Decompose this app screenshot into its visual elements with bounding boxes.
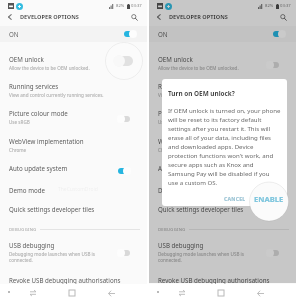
- staticText: Running services: [158, 82, 208, 90]
- staticText: use a custom OS.: [168, 178, 218, 186]
- button[interactable]: WebView implementation: [149, 136, 296, 158]
- button[interactable]: Revoke USB debugging authorisations: [0, 275, 147, 291]
- button[interactable]: Demo mode: [0, 185, 147, 201]
- staticText: Quick settings developer tiles: [9, 205, 95, 213]
- staticText: Picture colour mode: [9, 109, 68, 117]
- button[interactable]: Running services: [0, 81, 147, 103]
- staticText: ENABLE: [254, 193, 284, 203]
- staticText: erase all of your data, including files: [168, 133, 271, 141]
- button[interactable]: Home: [213, 285, 229, 300]
- staticText: Allow the device to be OEM unlocked.: [158, 65, 239, 71]
- staticText: Chrome: [158, 147, 176, 153]
- button[interactable]: Picture colour mode: [149, 108, 296, 130]
- staticText: CANCEL: [224, 195, 246, 202]
- staticText: ENABLE: [254, 194, 284, 204]
- button[interactable]: WebView implementation: [0, 136, 147, 158]
- button[interactable]: ON: [0, 26, 147, 42]
- button[interactable]: Revoke USB debugging authorisations: [149, 275, 296, 291]
- staticText: Quick settings developer tiles: [158, 205, 244, 213]
- button[interactable]: Back: [4, 11, 16, 23]
- button[interactable]: ON: [149, 26, 296, 42]
- staticText: 82%: [265, 3, 274, 9]
- button[interactable]: Auto update system: [149, 163, 296, 179]
- staticText: Auto update system: [9, 164, 68, 172]
- button[interactable]: OEM unlock: [0, 54, 147, 76]
- staticText: DEBUGGING: [9, 227, 37, 233]
- staticText: Chrome: [9, 147, 27, 153]
- staticText: Demo mode: [9, 186, 45, 194]
- button[interactable]: ENABLE: [254, 191, 284, 205]
- staticText: Demo mode: [158, 186, 194, 194]
- button[interactable]: Quick settings developer tiles: [0, 204, 147, 220]
- staticText: Debugging mode launches when USB is: [9, 251, 95, 257]
- button[interactable]: Recents: [25, 285, 40, 300]
- staticText: settings after you restart it. This will: [168, 124, 271, 132]
- staticText: Samsung Pay will be disabled if you: [168, 169, 270, 177]
- staticText: DEVELOPER OPTIONS: [20, 13, 79, 21]
- staticText: View and control currently running servi…: [9, 92, 104, 98]
- staticText: secure apps such as Knox and: [168, 160, 254, 168]
- button[interactable]: Home: [64, 285, 80, 300]
- staticText: Auto update system: [158, 164, 217, 172]
- button[interactable]: Recents: [174, 285, 189, 300]
- staticText: OEM unlock: [158, 55, 193, 63]
- staticText: Debugging mode launches when USB is: [158, 251, 244, 257]
- staticText: Running services: [9, 82, 59, 90]
- button[interactable]: Menu: [151, 285, 165, 299]
- staticText: OEM unlock: [9, 55, 44, 63]
- staticText: Revoke USB debugging authorisations: [158, 276, 270, 284]
- button[interactable]: Back: [153, 11, 165, 23]
- staticText: If OEM unlock is turned on, your phone: [168, 106, 281, 114]
- button[interactable]: Back: [103, 285, 119, 300]
- button[interactable]: Search: [128, 11, 140, 23]
- button[interactable]: USB debugging: [149, 240, 296, 266]
- button[interactable]: Search: [277, 11, 289, 23]
- staticText: Revoke USB debugging authorisations: [9, 276, 121, 284]
- staticText: connected.: [158, 257, 182, 263]
- staticText: WebView implementation: [158, 137, 233, 145]
- staticText: Allow the device to be OEM unlocked.: [9, 65, 90, 71]
- staticText: DEBUGGING: [158, 227, 186, 233]
- button[interactable]: Menu: [2, 285, 16, 299]
- staticText: Use sRGB: [9, 119, 30, 125]
- staticText: and downloaded apps. Device: [168, 142, 254, 150]
- button[interactable]: Demo mode: [149, 185, 296, 201]
- staticText: 82%: [116, 3, 125, 9]
- button[interactable]: CANCEL: [224, 193, 246, 203]
- staticText: View and control currently running servi…: [158, 92, 253, 98]
- staticText: ON: [9, 30, 19, 38]
- button[interactable]: Picture colour mode: [0, 108, 147, 130]
- button[interactable]: USB debugging: [0, 240, 147, 266]
- staticText: ON: [158, 30, 168, 38]
- staticText: Picture colour mode: [158, 109, 217, 117]
- button[interactable]: Back: [252, 285, 268, 300]
- staticText: WebView implementation: [9, 137, 84, 145]
- button[interactable]: Auto update system: [0, 163, 147, 179]
- button[interactable]: Quick settings developer tiles: [149, 204, 296, 220]
- staticText: Use sRGB: [158, 119, 179, 125]
- staticText: connected.: [9, 257, 33, 263]
- staticText: will be reset to its factory default: [168, 115, 262, 123]
- staticText: USB debugging: [158, 241, 204, 249]
- staticText: 03:37: [280, 3, 291, 9]
- staticText: protection functions won't work, and: [168, 151, 274, 159]
- button[interactable]: Running services: [149, 81, 296, 103]
- button[interactable]: OEM unlock: [149, 54, 296, 76]
- staticText: DEVELOPER OPTIONS: [169, 13, 228, 21]
- staticText: Turn on OEM unlock?: [168, 89, 235, 98]
- staticText: USB debugging: [9, 241, 55, 249]
- staticText: 03:37: [131, 3, 142, 9]
